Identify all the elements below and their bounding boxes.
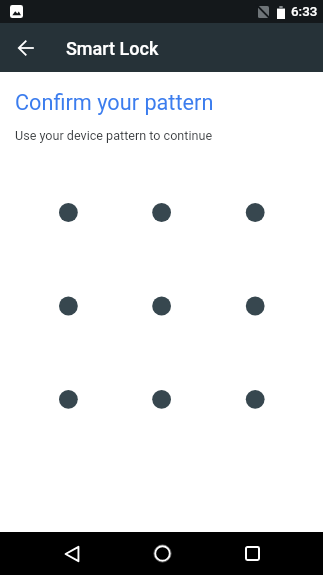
- staticText: 6:33: [291, 4, 318, 20]
- button[interactable]: Back: [27, 532, 117, 575]
- staticText: Smart Lock: [66, 38, 159, 59]
- staticText: Confirm your pattern: [15, 90, 214, 115]
- button[interactable]: Home: [117, 532, 207, 575]
- button[interactable]: Navigate up: [10, 32, 42, 64]
- staticText: Use your device pattern to continue: [15, 128, 213, 143]
- button[interactable]: Recent apps: [207, 532, 297, 575]
